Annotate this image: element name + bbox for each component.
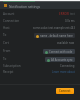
staticText: All Accounts sync [51, 58, 73, 62]
staticText: text [70, 12, 75, 16]
button[interactable]: Connect with code [43, 49, 75, 54]
staticText: 0.0s ms [65, 19, 75, 23]
staticText: Connecting [60, 64, 75, 68]
staticText: Learn more about [52, 70, 75, 74]
button[interactable]: name - default name here [34, 33, 75, 38]
staticText: ERROR [59, 12, 69, 16]
button[interactable]: All Accounts sync [45, 57, 75, 62]
staticText: name - default name here [40, 34, 73, 38]
staticText: Cert [3, 41, 9, 45]
staticText: From [3, 49, 11, 53]
staticText: Subscription [3, 64, 21, 68]
staticText: Receipt [3, 70, 14, 74]
staticText: Notification settings [9, 4, 41, 8]
staticText: To [3, 57, 7, 61]
button[interactable]: Connect [56, 88, 74, 94]
staticText: Connect [59, 89, 71, 93]
staticText: To [3, 33, 7, 37]
staticText: some-value-text.example.net:443 [33, 26, 75, 30]
staticText: Connect with code [49, 50, 73, 54]
staticText: Account [3, 12, 15, 16]
staticText: Host [3, 26, 10, 30]
staticText: available now [57, 41, 75, 45]
staticText: Connection [3, 19, 20, 23]
button[interactable]: Notification settings [0, 2, 80, 9]
